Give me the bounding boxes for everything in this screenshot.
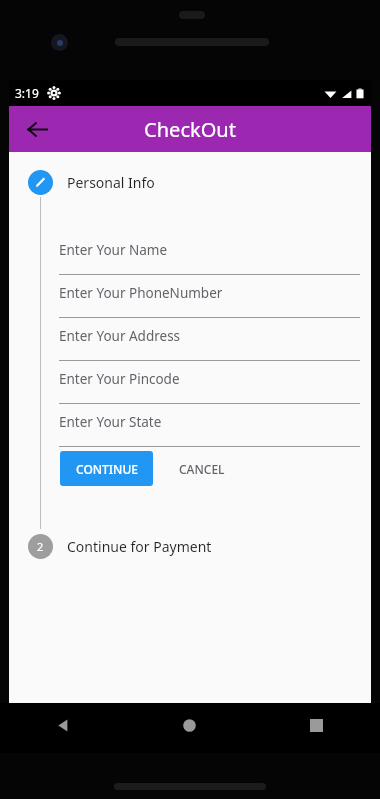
button[interactable]: Back [0,703,126,753]
staticText: 3:19 [15,85,39,101]
button[interactable]: Enter Your PhoneNumber [59,279,360,322]
button[interactable]: Back [19,111,55,147]
staticText: Enter Your State [59,413,162,431]
staticText: Enter Your Name [59,241,168,259]
button[interactable]: Enter Your State [59,408,360,451]
staticText: Personal Info [67,173,155,192]
staticText: Enter Your Pincode [59,370,180,388]
button[interactable]: CONTINUE [60,451,153,486]
button[interactable]: Enter Your Address [59,322,360,365]
staticText: Enter Your Address [59,327,181,345]
staticText: CANCEL [179,461,225,477]
button[interactable]: Enter Your Pincode [59,365,360,408]
staticText: CheckOut [144,116,236,143]
staticText: Enter Your PhoneNumber [59,284,223,302]
staticText: CONTINUE [76,461,138,477]
button[interactable]: Home [126,703,253,753]
button[interactable]: Recent apps [253,703,380,753]
button[interactable]: Personal Info [28,170,155,200]
button[interactable]: 2 [28,534,212,564]
staticText: 2 [37,539,44,554]
staticText: Continue for Payment [67,537,212,556]
button[interactable]: CANCEL [165,451,239,486]
button[interactable]: Enter Your Name [59,236,360,279]
